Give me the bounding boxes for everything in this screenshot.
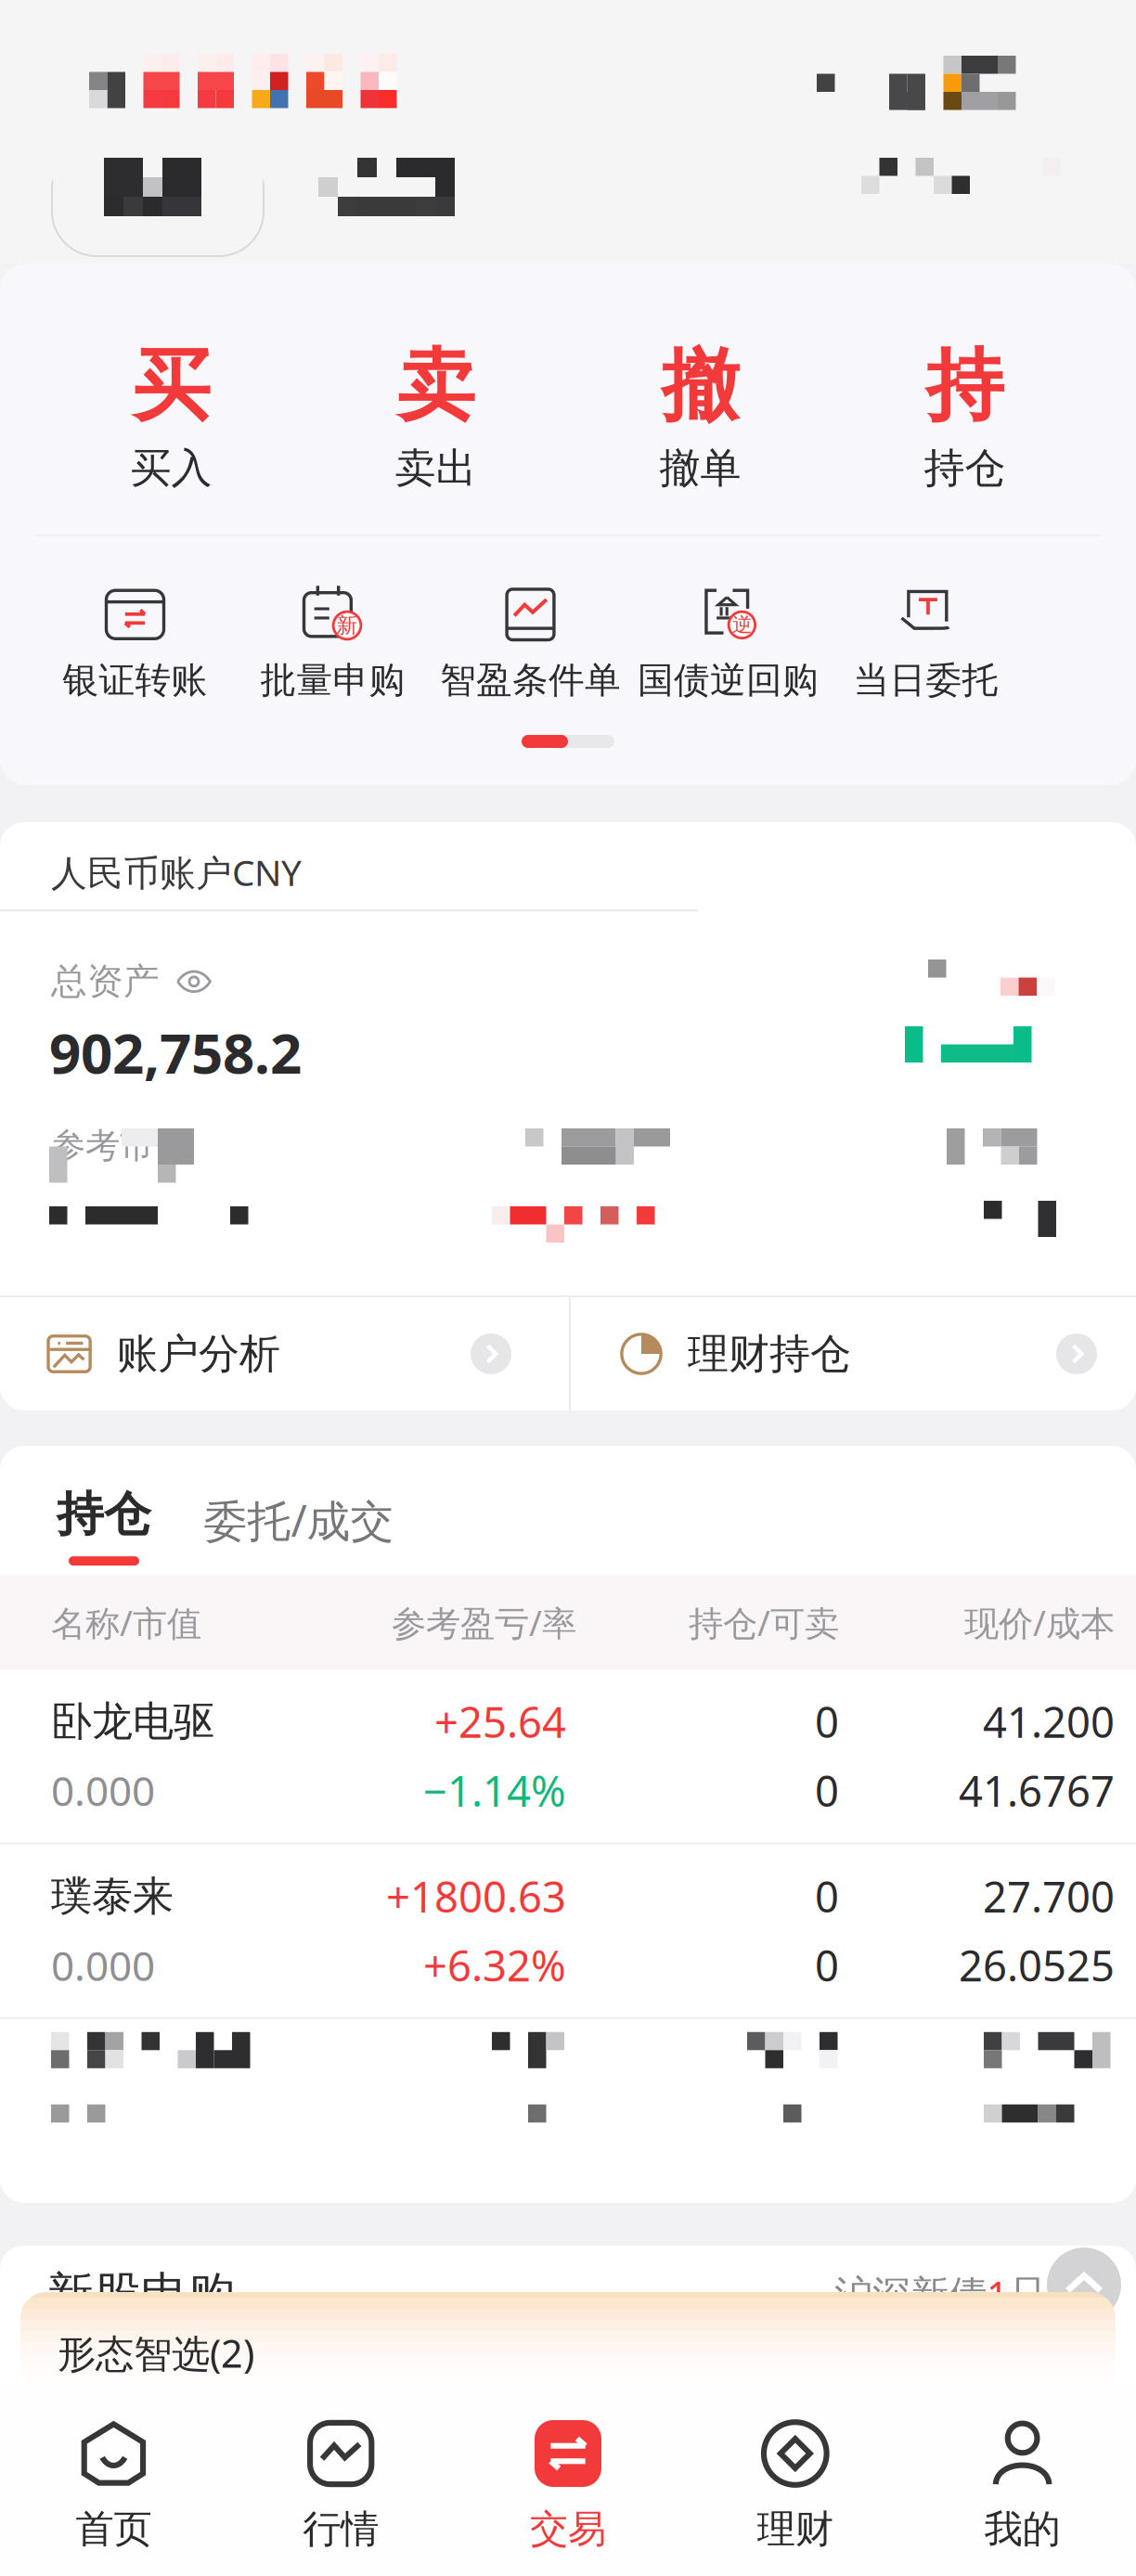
button[interactable]: 智盈条件单 [432, 579, 629, 709]
button[interactable]: 撤 [568, 332, 833, 499]
staticText: 当日委托 [853, 658, 998, 702]
staticText: 沪深新债 [834, 2271, 987, 2318]
staticText: 撤 [661, 338, 739, 434]
staticText: 现价/成本 [964, 1600, 1115, 1646]
button[interactable]: 卖 [303, 332, 568, 499]
staticText: 1 [987, 2269, 1009, 2320]
staticText: 璞泰来 [51, 1871, 174, 1921]
staticText: 逆 [732, 613, 752, 637]
staticText: 新 [336, 613, 358, 638]
staticText: 卧龙电驱 [51, 1696, 214, 1747]
button[interactable]: 账户分析 [0, 1297, 569, 1410]
button[interactable]: 持仓 [39, 1475, 169, 1576]
staticText: 名称/市值 [51, 1600, 201, 1646]
staticText: 0 [815, 1868, 839, 1924]
staticText: 新股申购 [46, 2266, 236, 2324]
button[interactable]: 银证转账 [36, 579, 234, 709]
staticText: 撤单 [659, 443, 741, 493]
staticText: 26.0525 [959, 1937, 1115, 1993]
staticText: 交易 [530, 2505, 606, 2553]
button[interactable]: 卧龙电驱 [0, 1669, 1136, 1842]
button[interactable]: 理财 [682, 2385, 909, 2576]
button[interactable]: 逆 [629, 579, 827, 709]
staticText: 持仓/可卖 [689, 1600, 839, 1646]
staticText: 卖 [397, 338, 475, 434]
button[interactable]: 我的 [909, 2385, 1136, 2576]
button[interactable]: 新 [234, 579, 432, 709]
staticText: 银证转账 [63, 658, 207, 702]
staticText: 0.000 [51, 1763, 155, 1817]
button[interactable]: 理财持仓 [571, 1297, 1136, 1410]
button[interactable]: 首页 [0, 2385, 227, 2576]
staticText: 持 [926, 338, 1004, 434]
button[interactable]: 行情 [227, 2385, 454, 2576]
staticText: 0 [815, 1762, 839, 1818]
staticText: 持仓 [924, 443, 1006, 493]
staticText: 总资产 [51, 960, 160, 1004]
staticText: 买入 [130, 443, 212, 493]
staticText: 902,758.2 [49, 1015, 302, 1089]
button[interactable]: 委托/成交 [169, 1475, 429, 1565]
staticText: 0 [815, 1694, 839, 1749]
staticText: 委托/成交 [204, 1491, 394, 1549]
staticText: 41.6767 [959, 1762, 1115, 1818]
staticText: 智盈条件单 [440, 658, 621, 702]
staticText: 持仓 [57, 1486, 151, 1543]
staticText: 27.700 [983, 1868, 1115, 1924]
staticText: 理财持仓 [688, 1329, 851, 1379]
button[interactable]: Scroll to top [1047, 2248, 1121, 2322]
staticText: 0.000 [51, 1938, 155, 1992]
staticText: 0 [815, 1937, 839, 1993]
button[interactable]: 当日委托 [827, 579, 1025, 709]
button[interactable]: 交易 [454, 2385, 682, 2576]
staticText: 人民币账户CNY [51, 848, 302, 896]
button[interactable]: 形态智选(2) [0, 2292, 1116, 2437]
staticText: +1800.63 [386, 1868, 566, 1924]
staticText: 账户分析 [117, 1329, 280, 1379]
staticText: 参考盈亏/率 [392, 1600, 576, 1646]
button[interactable]: 璞泰来 [0, 1844, 1136, 2017]
staticText: 形态智选(2) [58, 2327, 254, 2378]
staticText: 只 [1009, 2271, 1047, 2318]
staticText: 首页 [76, 2505, 152, 2553]
staticText: 行情 [303, 2505, 379, 2553]
button[interactable]: 买 [39, 332, 303, 499]
staticText: 41.200 [983, 1694, 1115, 1749]
staticText: 国债逆回购 [638, 658, 819, 702]
button[interactable]: 持 [833, 332, 1097, 499]
staticText: 理财 [757, 2505, 833, 2553]
staticText: +25.64 [434, 1694, 566, 1749]
staticText: −1.14% [423, 1762, 566, 1818]
staticText: 买 [132, 338, 210, 434]
staticText: 批量申购 [260, 658, 405, 702]
staticText: 我的 [984, 2505, 1060, 2553]
staticText: +6.32% [423, 1937, 566, 1993]
staticText: 参考市值 [51, 1125, 188, 1167]
staticText: 卖出 [395, 443, 477, 493]
button[interactable]: 新股申购 [0, 2245, 1136, 2403]
